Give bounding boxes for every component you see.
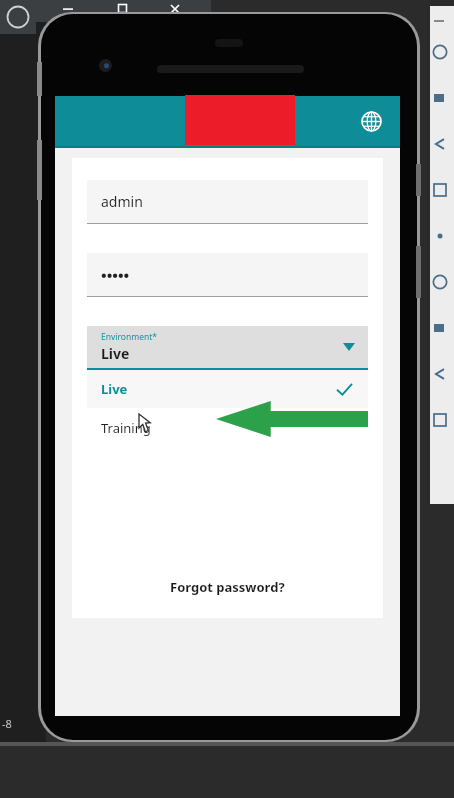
button[interactable]: Live (87, 370, 368, 408)
other: Maximize (116, 2, 129, 15)
staticText: ••••• (101, 265, 130, 285)
button[interactable]: Tool 7 (432, 366, 448, 382)
staticText: -8 (2, 716, 12, 731)
staticText: Training (101, 419, 151, 437)
button[interactable]: admin (87, 180, 368, 224)
button[interactable]: Environment* (87, 326, 368, 368)
button[interactable]: Tool 1 (432, 90, 448, 106)
other: Close (168, 2, 182, 16)
staticText: Live (101, 380, 128, 398)
button[interactable]: ••••• (87, 253, 368, 297)
button[interactable]: Forgot password? (160, 572, 295, 602)
button[interactable]: Change language (354, 104, 388, 138)
staticText: Live (101, 344, 130, 363)
staticText: Forgot password? (170, 578, 285, 596)
button[interactable]: Tool 8 (432, 412, 448, 428)
button[interactable]: Training (87, 408, 368, 448)
button[interactable]: Tool 4 (432, 228, 448, 244)
button[interactable]: Tool 5 (432, 274, 448, 290)
staticText: Environment* (101, 331, 157, 343)
button[interactable]: Tool 0 (432, 44, 448, 60)
button[interactable]: Tool 6 (432, 320, 448, 336)
button[interactable]: Minimize (61, 3, 75, 15)
button[interactable]: Tool 3 (432, 182, 448, 198)
button[interactable]: Maximize (116, 2, 129, 15)
other: Minimize (61, 3, 75, 15)
staticText: admin (101, 192, 143, 211)
button[interactable]: Help (6, 5, 30, 29)
button[interactable]: Tool 2 (432, 136, 448, 152)
button[interactable]: Close (168, 2, 182, 16)
